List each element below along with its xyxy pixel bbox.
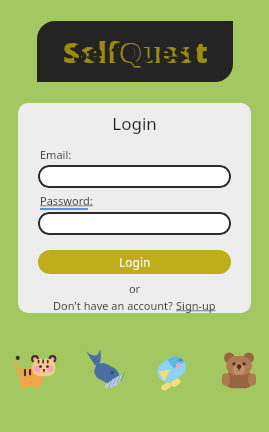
- staticText: SelfQuest: [73, 35, 198, 69]
- button[interactable]: Sign-up: [176, 298, 216, 313]
- staticText: or: [18, 281, 251, 296]
- staticText: SelfQuest: [63, 32, 208, 71]
- staticText: Login: [119, 254, 151, 270]
- button[interactable]: SelfQuest: [37, 21, 233, 82]
- button[interactable]: Bird: [148, 345, 194, 391]
- button[interactable]: Tiger: [12, 345, 58, 391]
- staticText: Sign-up: [176, 298, 216, 313]
- button[interactable]: Login: [38, 250, 231, 274]
- button[interactable]: Password:: [40, 193, 93, 208]
- button[interactable]: Whale: [80, 345, 126, 391]
- staticText: Password:: [40, 193, 93, 208]
- staticText: Login: [18, 112, 251, 135]
- staticText: Don't have an account?: [53, 298, 176, 313]
- button[interactable]: [38, 165, 231, 188]
- button[interactable]: [38, 212, 231, 235]
- staticText: Email:: [40, 147, 72, 162]
- button[interactable]: Teddy bear: [216, 345, 262, 391]
